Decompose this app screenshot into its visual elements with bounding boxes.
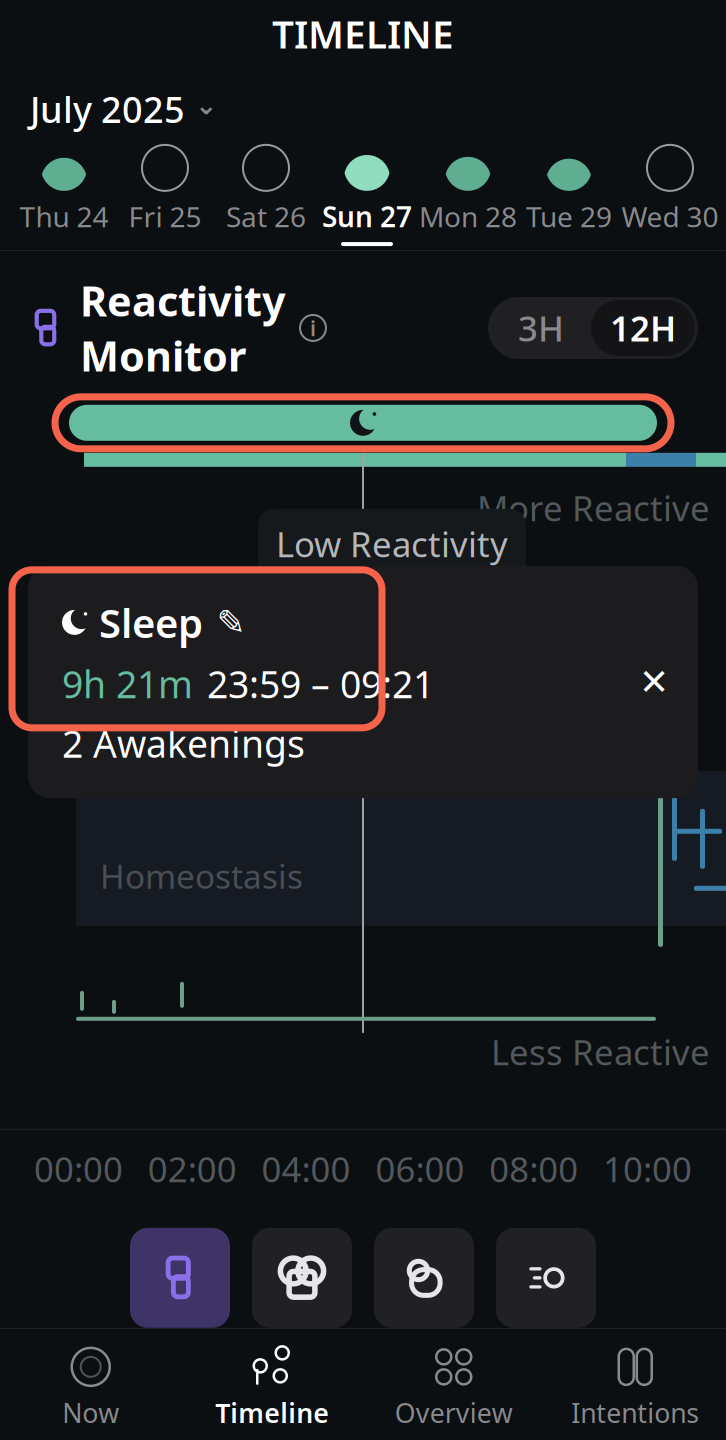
staticText: ✕ bbox=[639, 661, 669, 702]
staticText: Timeline bbox=[215, 1395, 329, 1430]
staticText: i bbox=[310, 314, 316, 342]
staticText: 02:00 bbox=[148, 1146, 237, 1192]
button[interactable]: Thu 24 bbox=[13, 145, 114, 246]
staticText: TIMELINE bbox=[272, 8, 454, 59]
staticText: 12H bbox=[610, 305, 676, 351]
staticText: 10:00 bbox=[603, 1146, 692, 1192]
button[interactable]: Activity bbox=[374, 1228, 474, 1328]
button[interactable]: Intentions bbox=[544, 1347, 726, 1430]
button[interactable]: Heart bbox=[252, 1228, 352, 1328]
staticText: 2 Awakenings bbox=[62, 718, 305, 768]
button[interactable]: Timeline bbox=[181, 1347, 363, 1430]
staticText: Intentions bbox=[571, 1395, 699, 1430]
button[interactable]: More metrics bbox=[496, 1228, 596, 1328]
button[interactable]: Fri 25 bbox=[114, 145, 215, 246]
staticText: Overview bbox=[395, 1395, 513, 1430]
staticText: Fri 25 bbox=[128, 198, 201, 235]
button[interactable]: 3H bbox=[491, 300, 591, 356]
button[interactable]: Sat 26 bbox=[215, 145, 316, 246]
staticText: Mon 28 bbox=[419, 198, 517, 235]
button[interactable]: Sleep period bbox=[55, 405, 671, 441]
button[interactable]: Reactivity bbox=[130, 1228, 230, 1328]
button[interactable]: Edit sleep bbox=[215, 606, 247, 638]
button[interactable]: Tue 29 bbox=[518, 145, 619, 246]
button[interactable]: Overview bbox=[363, 1347, 544, 1430]
staticText: Less Reactive bbox=[491, 1029, 710, 1075]
staticText: Sleep bbox=[99, 596, 203, 649]
staticText: Thu 24 bbox=[19, 198, 108, 235]
staticText: 23:59 – 09:21 bbox=[207, 659, 434, 708]
staticText: Tue 29 bbox=[526, 198, 612, 235]
staticText: More Reactive bbox=[477, 485, 710, 531]
staticText: Reactivity Monitor bbox=[80, 273, 286, 383]
staticText: 9h 21m bbox=[62, 659, 193, 708]
button[interactable]: Sun 27 bbox=[316, 145, 417, 246]
staticText: 04:44 bbox=[347, 569, 436, 615]
button[interactable]: Now bbox=[0, 1347, 181, 1430]
button[interactable]: Close bbox=[630, 658, 678, 706]
staticText: 00:00 bbox=[34, 1146, 123, 1192]
staticText: 04:00 bbox=[262, 1146, 351, 1192]
staticText: Now bbox=[62, 1395, 119, 1430]
button[interactable]: About Reactivity Monitor bbox=[296, 311, 330, 345]
staticText: Sat 26 bbox=[226, 198, 306, 235]
staticText: Low Reactivity bbox=[276, 521, 508, 567]
button[interactable]: 12H bbox=[591, 300, 695, 356]
staticText: 06:00 bbox=[375, 1146, 464, 1192]
staticText: 08:00 bbox=[489, 1146, 578, 1192]
button[interactable]: July 2025 bbox=[30, 85, 217, 133]
staticText: ⌄ bbox=[195, 90, 217, 120]
staticText: Wed 30 bbox=[621, 198, 718, 235]
staticText: ✎ bbox=[216, 603, 245, 642]
staticText: Sun 27 bbox=[322, 198, 412, 235]
staticText: July 2025 bbox=[30, 85, 185, 133]
staticText: Homeostasis bbox=[100, 854, 303, 898]
staticText: 3H bbox=[518, 305, 564, 351]
button[interactable]: Wed 30 bbox=[619, 145, 720, 246]
button[interactable]: Mon 28 bbox=[417, 145, 518, 246]
